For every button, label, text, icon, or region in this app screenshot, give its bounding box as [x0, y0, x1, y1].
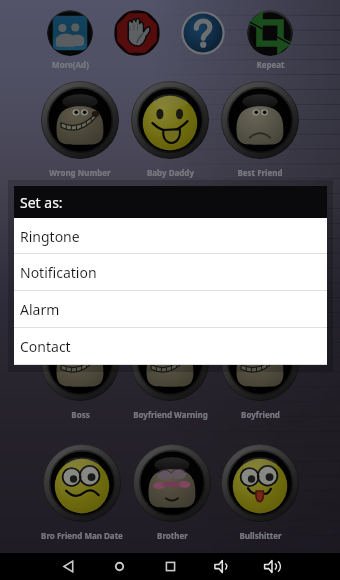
button[interactable]: Boss — [41, 323, 119, 401]
staticText: Boss — [71, 409, 90, 420]
staticText: More(Ad) — [52, 59, 89, 70]
staticText: Set as: — [20, 193, 63, 212]
button[interactable]: Recent apps — [145, 553, 196, 580]
button[interactable]: Alarm — [14, 291, 327, 328]
button[interactable]: Ringtone — [14, 218, 327, 254]
staticText: Notification — [20, 263, 97, 282]
staticText: Boyfriend — [241, 409, 280, 420]
staticText: Baby Daddy — [147, 167, 194, 178]
button[interactable]: Home — [94, 553, 145, 580]
button[interactable]: Brother — [133, 444, 211, 522]
button[interactable]: Stop — [114, 10, 160, 56]
staticText: Big Mama — [240, 288, 280, 299]
staticText: Wrong Number — [49, 167, 111, 178]
staticText: Buddy — [67, 288, 93, 299]
button[interactable]: Boyfriend Warning — [131, 323, 209, 401]
staticText: Repeat — [256, 59, 285, 70]
button[interactable]: Best Friend — [221, 81, 299, 159]
button[interactable]: Boyfriend — [221, 323, 299, 401]
button[interactable]: Wrong Number — [41, 81, 119, 159]
staticText: Bullshitter — [239, 530, 282, 541]
staticText: Ringtone — [20, 227, 80, 246]
button[interactable]: More advertisements — [47, 10, 93, 56]
button[interactable]: Volume up — [247, 553, 297, 580]
button[interactable]: Back — [43, 553, 94, 580]
button[interactable]: Notification — [14, 254, 327, 291]
staticText: Contact — [20, 337, 71, 356]
button[interactable]: Contact — [14, 328, 327, 365]
button[interactable]: Repeat — [247, 10, 293, 56]
button[interactable]: Buddy — [41, 202, 119, 280]
button[interactable]: Baby Daddy — [131, 81, 209, 159]
staticText: Best Friend — [237, 167, 283, 178]
staticText: Boyfriend Warning — [133, 409, 208, 420]
button[interactable]: Bestie — [131, 202, 209, 280]
staticText: Bro Friend Man Date — [41, 530, 123, 541]
staticText: Alarm — [20, 300, 60, 319]
button[interactable]: Bro Friend Man Date — [43, 444, 121, 522]
staticText: Brother — [157, 530, 188, 541]
staticText: Bestie — [158, 288, 183, 299]
button[interactable]: Volume down — [196, 553, 247, 580]
button[interactable]: Help — [180, 10, 226, 56]
button[interactable]: Big Mama — [221, 202, 299, 280]
button[interactable]: Bullshitter — [221, 444, 299, 522]
